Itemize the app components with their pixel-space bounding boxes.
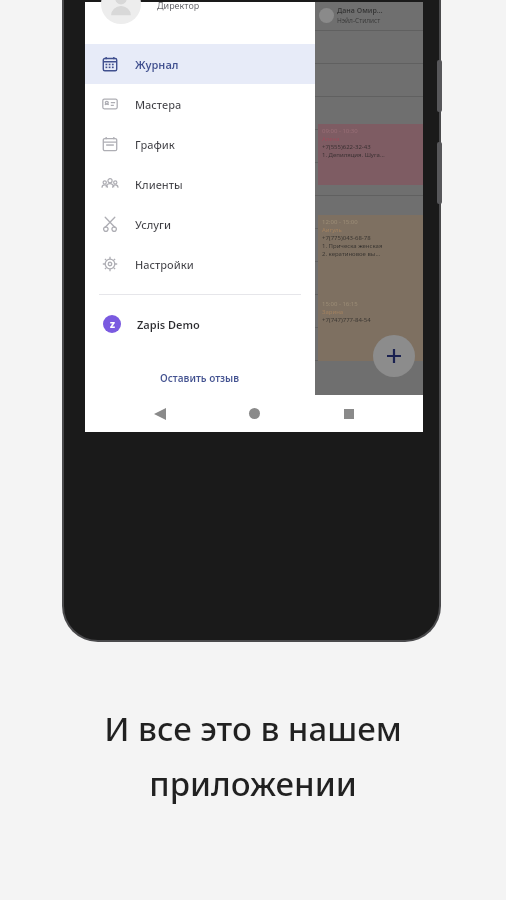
- staticText: приложении: [149, 761, 357, 806]
- button[interactable]: График: [85, 124, 315, 164]
- button[interactable]: Журнал: [85, 44, 315, 84]
- staticText: Услуги: [135, 217, 172, 232]
- staticText: 12:00 - 15:00: [322, 218, 358, 226]
- button[interactable]: Add appointment: [373, 335, 415, 377]
- staticText: +7(775)043-68-78: [322, 234, 371, 242]
- staticText: 1. Депиляция. Шуга…: [322, 151, 385, 159]
- staticText: 2. кератиновое вы…: [322, 250, 381, 258]
- staticText: Клиенты: [135, 177, 183, 192]
- staticText: Настройки: [135, 257, 194, 272]
- button[interactable]: Оставить отзыв: [85, 361, 315, 395]
- staticText: Аигуль: [322, 226, 342, 234]
- button[interactable]: Мастера: [85, 84, 315, 124]
- staticText: 1. Прическа женская: [322, 242, 383, 250]
- staticText: Журнал: [135, 57, 179, 72]
- staticText: 15:00 - 16:15: [322, 300, 358, 308]
- staticText: График: [135, 137, 175, 152]
- staticText: z: [110, 317, 115, 331]
- staticText: Алена: [322, 135, 340, 143]
- staticText: 09:00 - 10:30: [322, 127, 358, 135]
- button[interactable]: Услуги: [85, 204, 315, 244]
- staticText: Zapis Demo: [137, 317, 200, 332]
- staticText: Директор: [157, 0, 200, 11]
- button[interactable]: Клиенты: [85, 164, 315, 204]
- staticText: Дана Омир…: [337, 6, 383, 16]
- staticText: Оставить отзыв: [160, 371, 240, 385]
- staticText: Мастера: [135, 97, 182, 112]
- button[interactable]: z: [85, 307, 315, 341]
- staticText: +7(747)777-84-54: [322, 316, 371, 324]
- staticText: +7(555)622-32-43: [322, 143, 371, 151]
- button[interactable]: Recents: [329, 395, 369, 432]
- staticText: Зарина: [322, 308, 344, 316]
- staticText: И все это в нашем: [104, 706, 402, 751]
- staticText: Нэйл-Стилист: [337, 16, 381, 25]
- button[interactable]: Настройки: [85, 244, 315, 284]
- button[interactable]: Home: [234, 395, 274, 432]
- button[interactable]: Back: [140, 395, 180, 432]
